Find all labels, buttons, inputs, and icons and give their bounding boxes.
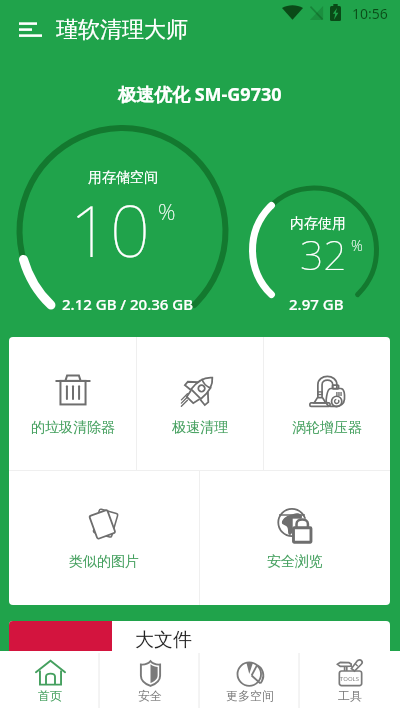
- staticText: 涡轮增压器: [292, 419, 362, 437]
- staticText: %: [351, 235, 363, 255]
- staticText: 内存使用: [290, 215, 346, 233]
- button[interactable]: 工具: [300, 651, 400, 710]
- staticText: 10: [70, 182, 150, 277]
- staticText: 2.12 GB / 20.36 GB: [62, 294, 194, 314]
- button[interactable]: 更多空间: [200, 651, 300, 710]
- staticText: 极速清理: [172, 419, 228, 437]
- staticText: 更多空间: [226, 688, 274, 703]
- button[interactable]: 极速清理: [137, 337, 263, 470]
- staticText: TOOLS: [340, 675, 360, 683]
- button[interactable]: 涡轮增压器: [264, 337, 390, 470]
- staticText: 大文件: [135, 628, 192, 652]
- staticText: 安全浏览: [267, 553, 323, 571]
- staticText: 用存储空间: [88, 169, 158, 187]
- staticText: 瑾软清理大师: [56, 16, 188, 44]
- staticText: %: [158, 196, 176, 226]
- staticText: 工具: [338, 688, 362, 703]
- staticText: 极速优化 SM-G9730: [118, 82, 282, 107]
- staticText: 首页: [38, 688, 62, 703]
- staticText: 的垃圾清除器: [31, 419, 115, 437]
- button[interactable]: 安全: [100, 651, 200, 710]
- staticText: 10:56: [352, 4, 388, 23]
- button[interactable]: 安全浏览: [200, 471, 390, 605]
- staticText: 安全: [138, 688, 162, 703]
- button[interactable]: 类似的图片: [9, 471, 199, 605]
- staticText: 2.97 GB: [289, 294, 344, 314]
- staticText: 32: [300, 226, 347, 282]
- button[interactable]: 的垃圾清除器: [9, 337, 136, 470]
- button[interactable]: 首页: [0, 651, 100, 710]
- button[interactable]: Menu: [6, 11, 45, 49]
- staticText: 类似的图片: [69, 553, 139, 571]
